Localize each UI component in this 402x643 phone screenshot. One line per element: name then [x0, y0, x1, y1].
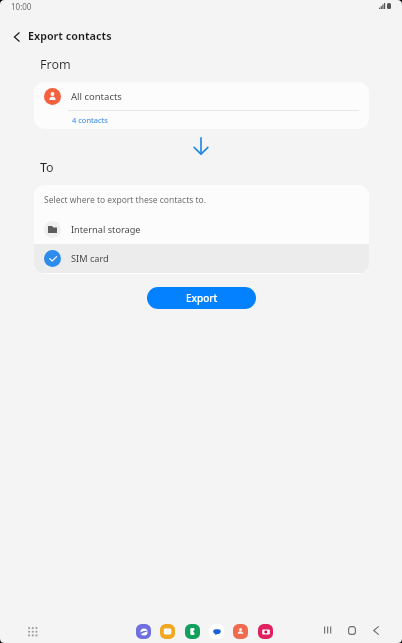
button[interactable]: SIM card: [34, 244, 369, 273]
button[interactable]: Internal storage: [34, 215, 369, 244]
staticText: 4 contacts: [72, 115, 108, 125]
staticText: 10:00: [11, 1, 32, 12]
staticText: Internal storage: [71, 223, 141, 236]
button[interactable]: All contacts: [34, 82, 369, 129]
staticText: Select where to export these contacts to…: [44, 194, 207, 206]
button[interactable]: Export: [147, 287, 256, 309]
staticText: From: [40, 56, 71, 73]
button[interactable]: Navigate up: [6, 26, 28, 48]
button[interactable]: Camera: [258, 624, 273, 639]
staticText: Export: [186, 291, 218, 305]
button[interactable]: Home: [342, 620, 362, 640]
button[interactable]: Apps: [22, 621, 42, 641]
button[interactable]: Contacts: [233, 624, 248, 639]
staticText: All contacts: [71, 90, 122, 103]
button[interactable]: Back: [366, 620, 386, 640]
button[interactable]: Messages: [209, 624, 224, 639]
button[interactable]: My Files: [160, 624, 175, 639]
button[interactable]: Internet: [136, 624, 151, 639]
staticText: To: [40, 159, 54, 176]
staticText: SIM card: [71, 252, 109, 265]
staticText: Export contacts: [28, 29, 112, 44]
button[interactable]: Recent apps: [317, 620, 337, 640]
button[interactable]: Phone: [185, 624, 200, 639]
